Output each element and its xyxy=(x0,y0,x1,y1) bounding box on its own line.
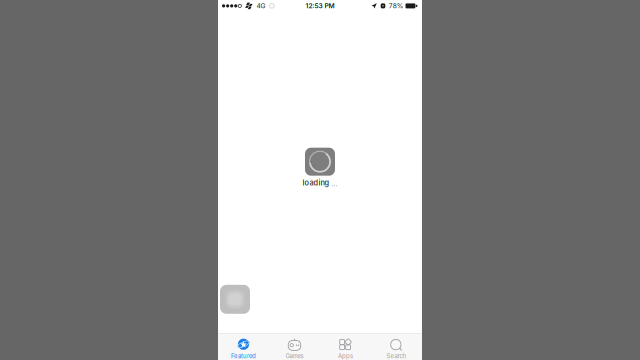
button[interactable]: Search xyxy=(371,333,422,360)
button[interactable]: Games xyxy=(269,333,320,360)
staticText: Games xyxy=(285,352,303,360)
staticText: 12:53 PM xyxy=(305,2,334,10)
staticText: ... xyxy=(331,181,337,188)
staticText: Featured xyxy=(231,352,256,360)
staticText: loading xyxy=(303,178,330,187)
staticText: 78% xyxy=(389,2,404,10)
staticText: Search xyxy=(386,352,406,360)
staticText: 4G xyxy=(257,2,266,10)
staticText: Apps xyxy=(338,352,353,360)
button[interactable]: Apps xyxy=(320,333,371,360)
button[interactable]: App artwork, still loading xyxy=(220,285,250,314)
button[interactable]: Featured xyxy=(218,333,269,360)
